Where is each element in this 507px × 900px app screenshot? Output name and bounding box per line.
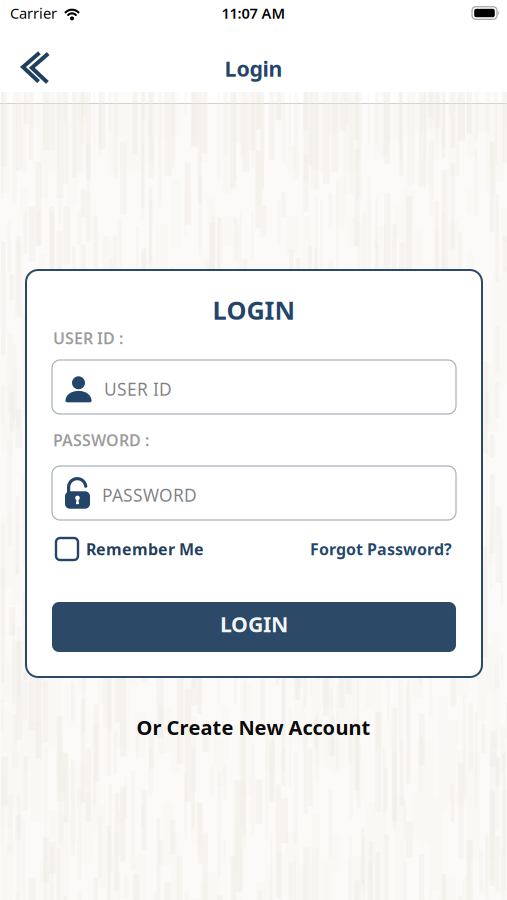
staticText: 11:07 AM [221,3,285,23]
staticText: Login [224,54,282,83]
button[interactable]: LOGIN [52,602,456,652]
button[interactable]: Or Create New Account [0,714,507,741]
button[interactable]: USER ID [52,360,456,414]
staticText: LOGIN [212,293,295,327]
staticText: Forgot Password? [310,538,452,560]
staticText: USER ID : [53,327,123,349]
staticText: LOGIN [220,610,288,638]
staticText: USER ID [104,377,172,400]
button[interactable]: Back [0,26,50,103]
button[interactable]: Forgot Password? [310,538,452,560]
staticText: PASSWORD : [53,429,149,451]
button[interactable]: Remember Me [56,538,204,560]
staticText: PASSWORD [102,483,197,506]
staticText: Remember Me [86,538,204,560]
staticText: Or Create New Account [136,714,370,741]
staticText: Carrier [10,3,57,23]
button[interactable]: PASSWORD [52,466,456,520]
